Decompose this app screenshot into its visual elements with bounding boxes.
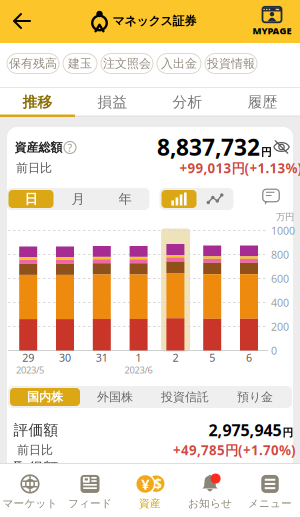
staticText: 建玉 — [68, 56, 92, 71]
staticText: 前日比 — [17, 443, 53, 457]
button[interactable]: 投資信託 — [150, 388, 220, 406]
button[interactable]: 履歴 — [225, 88, 300, 116]
staticText: 評価額 — [13, 421, 58, 439]
staticText: フィード — [68, 497, 112, 510]
staticText: 資産 — [139, 497, 161, 510]
staticText: 日 — [24, 191, 37, 207]
button[interactable]: コメント — [261, 188, 281, 206]
staticText: 2 — [172, 350, 178, 365]
staticText: 推移 — [22, 93, 52, 111]
button[interactable]: 金額を隠す — [272, 140, 290, 154]
staticText: 月 — [71, 191, 84, 207]
button[interactable]: 月 — [55, 190, 100, 208]
staticText: 投資信託 — [161, 390, 209, 404]
staticText: +99,013円(+1.13%) — [179, 159, 300, 177]
staticText: 円 — [261, 146, 272, 159]
button[interactable]: 年 — [102, 190, 147, 208]
button[interactable]: 預り金 — [220, 388, 290, 406]
button[interactable]: 棒グラフ — [161, 190, 196, 208]
button[interactable]: フィード — [60, 469, 120, 515]
staticText: 31 — [96, 350, 108, 365]
staticText: 年 — [118, 191, 131, 207]
button[interactable]: 保有残高 — [7, 53, 59, 73]
button[interactable]: 建玉 — [63, 53, 97, 73]
staticText: 預り金 — [237, 390, 273, 404]
staticText: 注文照会 — [103, 56, 151, 71]
staticText: ? — [67, 140, 72, 155]
staticText: メニュー — [248, 497, 292, 510]
button[interactable]: 日 — [8, 190, 53, 208]
button[interactable]: 入出金 — [157, 53, 201, 73]
button[interactable]: 投資情報 — [205, 53, 257, 73]
button[interactable]: 損益 — [75, 88, 150, 116]
staticText: 0 — [271, 343, 277, 358]
staticText: 入出金 — [161, 56, 197, 71]
button[interactable]: 分析 — [150, 88, 225, 116]
button[interactable]: 国内株 — [10, 388, 80, 406]
button[interactable]: 注文照会 — [101, 53, 153, 73]
staticText: $ — [154, 475, 162, 492]
staticText: 5 — [209, 350, 215, 365]
staticText: 投資情報 — [207, 56, 255, 71]
staticText: 1 — [136, 350, 142, 365]
staticText: 2,975,945 — [208, 419, 281, 441]
staticText: +2,975,945円(+1.70%) — [163, 460, 300, 478]
button[interactable]: メニュー — [240, 469, 300, 515]
staticText: MYPAGE — [252, 25, 291, 37]
staticText: 1000 — [271, 223, 295, 238]
staticText: お知らせ — [188, 497, 232, 510]
staticText: マーケット — [2, 497, 57, 510]
staticText: 履歴 — [247, 93, 277, 111]
staticText: 2023/6 — [124, 364, 152, 376]
staticText: ¥ — [141, 474, 149, 494]
button[interactable]: お知らせ — [180, 469, 240, 515]
staticText: 国内株 — [27, 390, 63, 404]
staticText: 損益 — [97, 93, 127, 111]
staticText: 30 — [59, 350, 71, 365]
staticText: 万円 — [276, 211, 294, 223]
staticText: 400 — [271, 295, 289, 310]
staticText: 200 — [271, 319, 289, 334]
button[interactable]: 推移 — [0, 88, 75, 116]
staticText: 円 — [282, 426, 293, 439]
staticText: 分析 — [172, 93, 202, 111]
staticText: 2023/5 — [16, 364, 44, 376]
staticText: 8,837,732 — [157, 132, 260, 162]
staticText: 29 — [22, 350, 34, 365]
staticText: 前日比 — [16, 161, 52, 175]
staticText: 800 — [271, 247, 289, 262]
button[interactable]: MYPAGE — [252, 6, 291, 37]
staticText: 600 — [271, 271, 289, 286]
staticText: 外国株 — [97, 390, 133, 404]
staticText: 資産総額 — [14, 140, 62, 155]
staticText: マネックス証券 — [112, 14, 196, 28]
button[interactable]: 折れ線グラフ — [198, 190, 231, 208]
button[interactable]: マーケット — [0, 469, 60, 515]
button[interactable]: $ — [120, 469, 180, 515]
button[interactable]: 外国株 — [80, 388, 150, 406]
staticText: +49,785円(+1.70%) — [173, 441, 296, 459]
staticText: 取得額 — [13, 459, 58, 477]
staticText: 保有残高 — [9, 56, 57, 71]
button[interactable]: Back — [0, 0, 44, 42]
staticText: 6 — [246, 350, 252, 365]
